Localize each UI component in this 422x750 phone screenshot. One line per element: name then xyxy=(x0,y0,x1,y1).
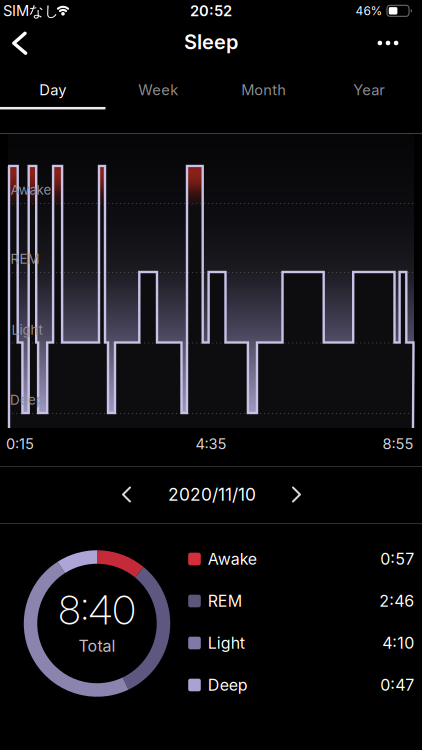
staticText: Awake xyxy=(208,550,257,568)
staticText: Day xyxy=(39,81,66,99)
staticText: Light xyxy=(208,634,245,652)
button[interactable]: More xyxy=(368,28,408,58)
staticText: 8:40 xyxy=(58,586,135,634)
staticText: 2:46 xyxy=(379,592,414,610)
staticText: 4:35 xyxy=(195,435,226,453)
staticText: 2020/11/10 xyxy=(168,484,256,505)
staticText: 8:55 xyxy=(382,435,413,453)
staticText: Light xyxy=(11,322,42,338)
staticText: Week xyxy=(138,81,178,99)
staticText: 0:57 xyxy=(380,550,414,568)
staticText: 0:47 xyxy=(380,676,414,694)
staticText: REM xyxy=(10,251,39,267)
button[interactable]: Previous day xyxy=(120,486,136,502)
staticText: 46% xyxy=(355,4,382,18)
button[interactable]: Year xyxy=(317,68,422,112)
staticText: REM xyxy=(208,592,242,610)
button[interactable]: Back xyxy=(7,30,33,56)
staticText: Deep xyxy=(208,676,248,694)
button[interactable]: Week xyxy=(106,68,211,112)
button[interactable]: Next day xyxy=(287,486,303,502)
button[interactable]: Day xyxy=(0,68,105,112)
staticText: Awake xyxy=(10,182,51,198)
staticText: Deep xyxy=(10,392,44,408)
staticText: 20:52 xyxy=(190,2,232,20)
staticText: Sleep xyxy=(184,30,238,54)
staticText: Year xyxy=(353,81,385,99)
staticText: SIMなし xyxy=(3,2,59,20)
button[interactable]: Month xyxy=(211,68,316,112)
staticText: Month xyxy=(241,81,286,99)
staticText: 4:10 xyxy=(382,634,414,652)
staticText: 0:15 xyxy=(6,435,34,453)
staticText: Total xyxy=(78,637,115,655)
